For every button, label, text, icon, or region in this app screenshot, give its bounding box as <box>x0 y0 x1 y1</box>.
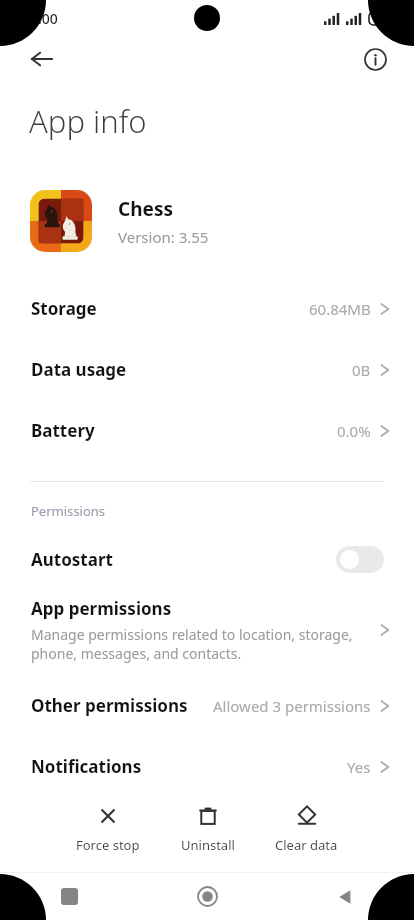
button[interactable]: Home <box>138 873 276 920</box>
staticText: App info <box>29 100 147 142</box>
staticText: Chess <box>118 196 173 222</box>
button[interactable]: Battery <box>0 400 414 461</box>
staticText: Other permissions <box>31 694 188 717</box>
button[interactable]: Force stop <box>70 800 146 858</box>
button[interactable]: Storage <box>0 278 414 339</box>
button[interactable]: Recents <box>0 873 138 920</box>
button[interactable]: Data usage <box>0 339 414 400</box>
staticText: 0B <box>352 360 371 380</box>
staticText: Yes <box>347 757 371 777</box>
staticText: 10:00 <box>22 9 58 28</box>
staticText: Permissions <box>31 502 106 520</box>
button[interactable]: Back <box>276 873 414 920</box>
staticText: App permissions <box>31 597 172 620</box>
staticText: Allowed 3 permissions <box>213 696 371 716</box>
staticText: Manage permissions related to location, … <box>31 625 353 663</box>
staticText: Data usage <box>31 358 127 381</box>
staticText: Clear data <box>275 836 338 854</box>
button[interactable]: Uninstall <box>175 800 241 858</box>
staticText: 0.0% <box>337 421 371 441</box>
staticText: Uninstall <box>181 836 235 854</box>
button[interactable]: Autostart <box>0 537 414 581</box>
button[interactable]: Back <box>20 37 64 81</box>
staticText: Battery <box>31 419 95 442</box>
staticText: 60.84MB <box>309 299 371 319</box>
button[interactable]: Notifications <box>0 736 414 797</box>
staticText: Force stop <box>76 836 140 854</box>
button[interactable]: App permissions <box>0 593 414 675</box>
staticText: Version: 3.55 <box>118 227 209 247</box>
staticText: Notifications <box>31 755 142 778</box>
staticText: Storage <box>31 297 97 320</box>
button[interactable]: App details <box>353 37 397 81</box>
button[interactable]: Other permissions <box>0 675 414 736</box>
staticText: Autostart <box>31 548 113 571</box>
button[interactable]: Clear data <box>269 800 344 858</box>
